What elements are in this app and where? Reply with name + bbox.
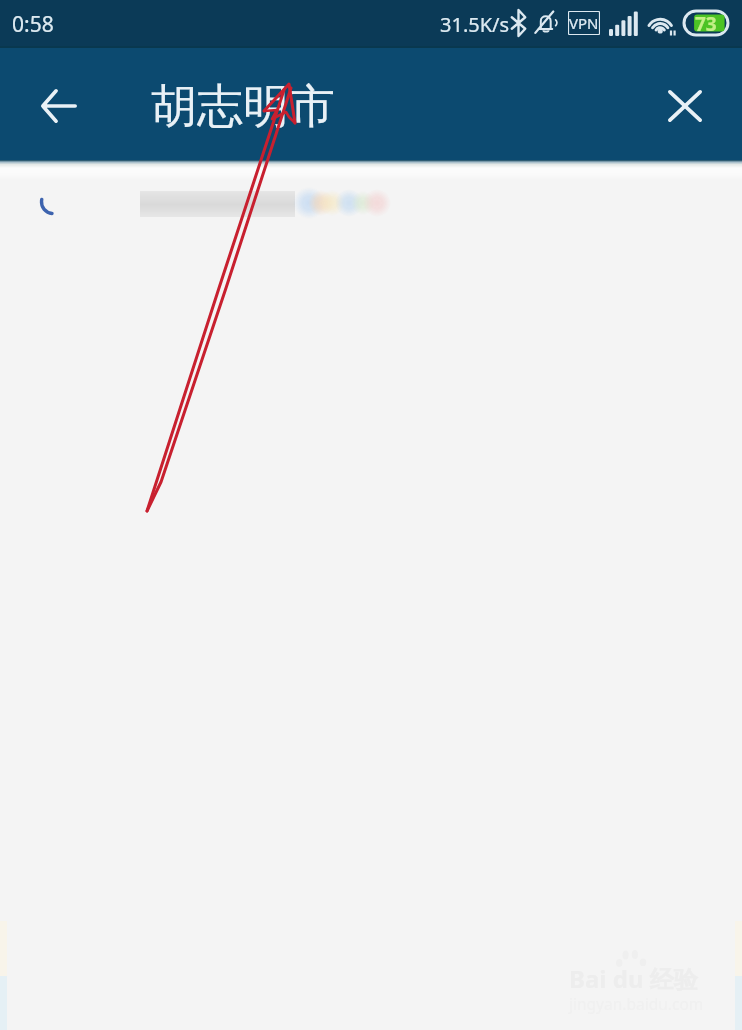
staticText: VPN <box>569 13 599 33</box>
staticText: 73 <box>695 11 717 35</box>
staticText: 0:58 <box>12 10 54 39</box>
staticText: 胡志明市 <box>151 78 335 136</box>
button[interactable]: Back <box>21 68 97 144</box>
staticText: 31.5K/s <box>440 11 510 38</box>
button[interactable]: Close <box>650 71 720 141</box>
